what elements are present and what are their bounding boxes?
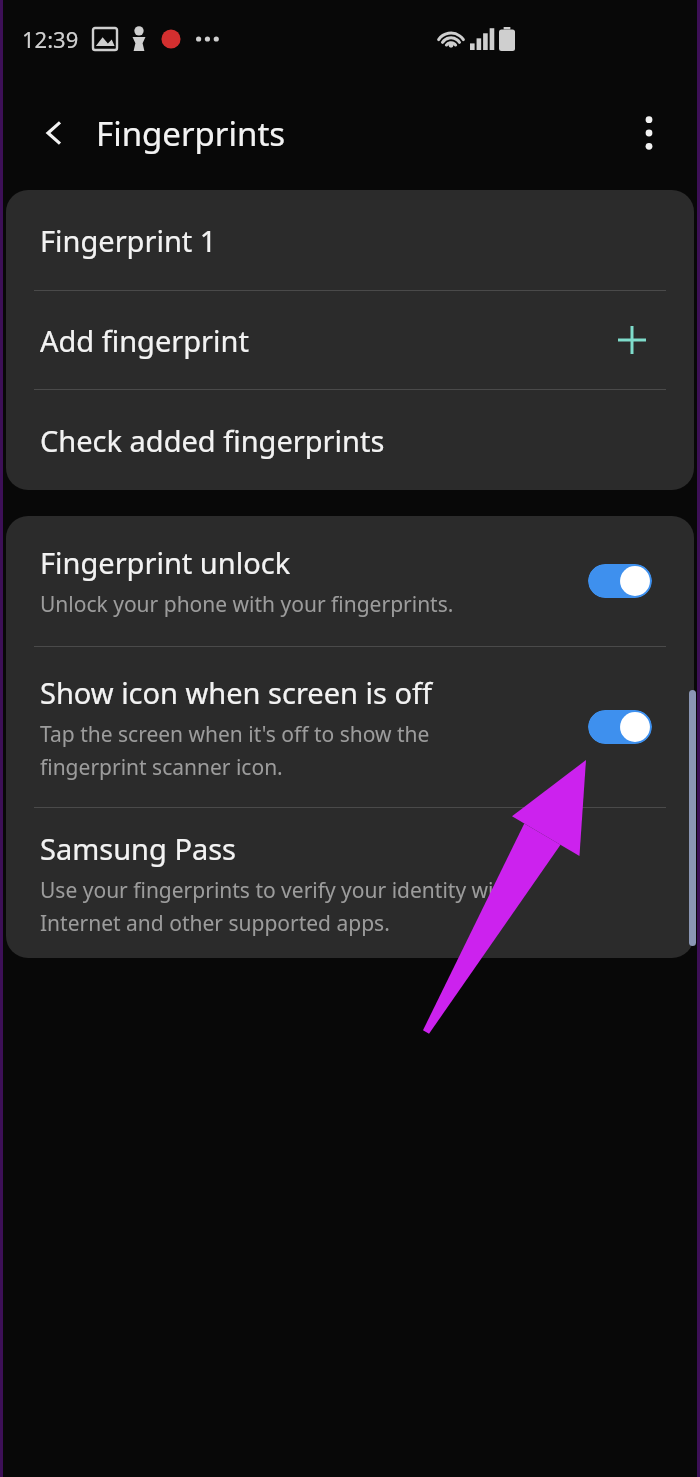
staticText: Unlock your phone with your fingerprints… xyxy=(40,590,454,619)
button[interactable]: Fingerprint unlock toggle, on xyxy=(588,564,652,598)
staticText: Samsung Pass xyxy=(40,829,237,868)
button[interactable]: Back xyxy=(26,105,82,161)
staticText: 12:39 xyxy=(22,24,79,54)
button[interactable]: Show icon when screen is off xyxy=(6,647,694,807)
button[interactable]: Fingerprint unlock xyxy=(6,516,694,646)
button[interactable]: Add fingerprint xyxy=(6,291,694,389)
button[interactable]: Samsung Pass xyxy=(6,808,694,958)
staticText: Use your fingerprints to verify your ide… xyxy=(40,876,515,905)
staticText: fingerprint scanner icon. xyxy=(40,753,283,782)
button[interactable]: Fingerprint 1 xyxy=(6,190,694,290)
staticText: Fingerprint 1 xyxy=(40,221,217,260)
staticText: Add fingerprint xyxy=(40,321,249,360)
button[interactable]: More options xyxy=(620,104,678,162)
staticText: Internet and other supported apps. xyxy=(40,909,390,938)
staticText: Show icon when screen is off xyxy=(40,673,432,712)
button[interactable]: Show icon when screen is off toggle, on xyxy=(588,710,652,744)
staticText: Check added fingerprints xyxy=(40,421,385,460)
staticText: Fingerprints xyxy=(96,111,286,156)
staticText: Fingerprint unlock xyxy=(40,543,291,582)
button[interactable]: Check added fingerprints xyxy=(6,390,694,490)
staticText: Tap the screen when it's off to show the xyxy=(40,720,430,749)
